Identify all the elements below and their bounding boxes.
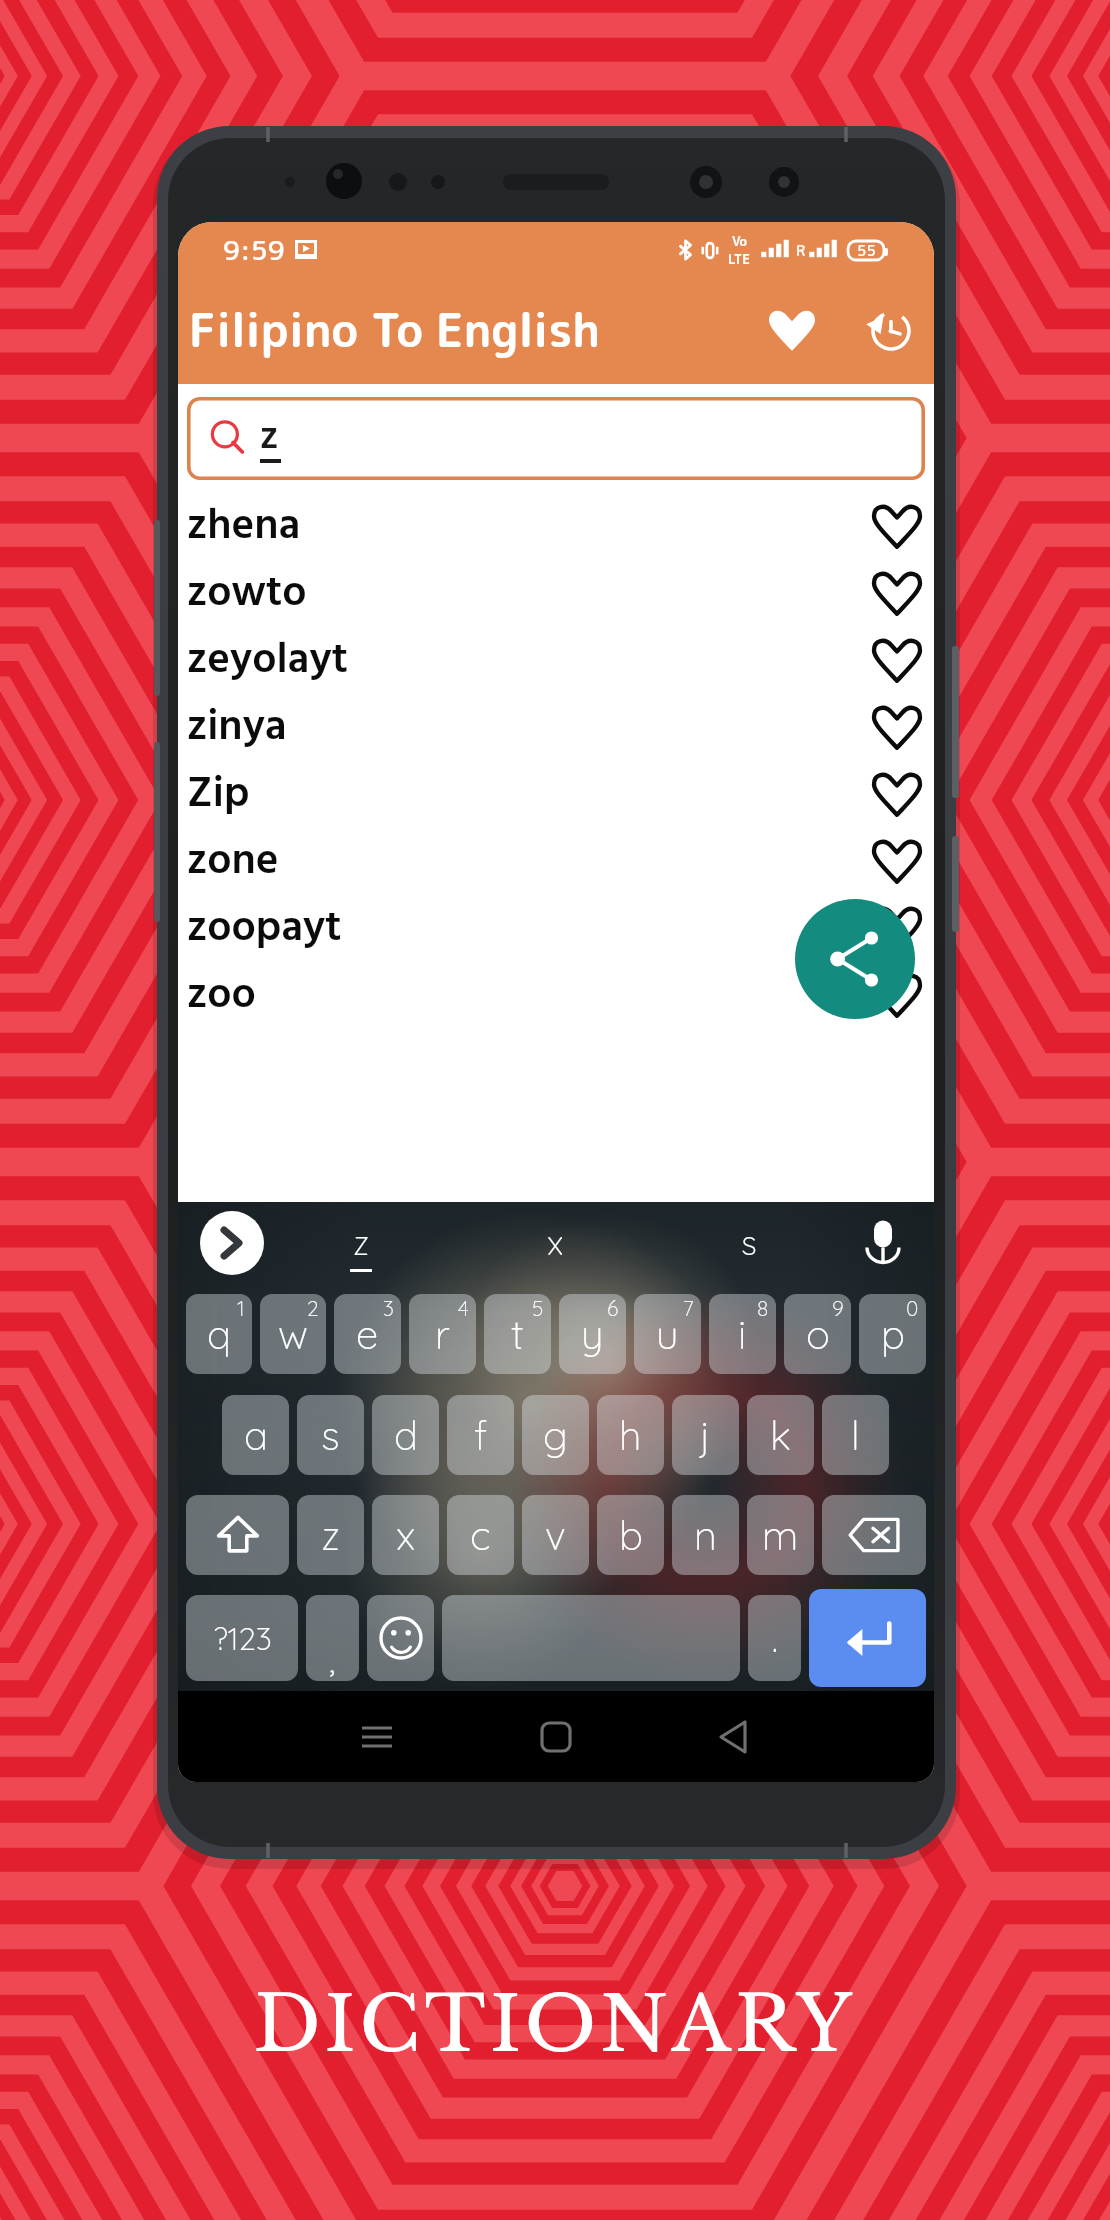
staticText: u [656, 1309, 679, 1359]
button[interactable]: l [822, 1395, 889, 1475]
staticText: w [278, 1309, 308, 1359]
button[interactable]: x [458, 1202, 652, 1283]
button[interactable]: zhena [178, 493, 934, 560]
button[interactable]: More options [200, 1211, 264, 1275]
button[interactable]: Space [442, 1595, 740, 1681]
staticText: zhena [187, 493, 301, 560]
staticText: zowto [187, 560, 307, 627]
staticText: . [772, 1616, 778, 1661]
staticText: zinya [187, 694, 287, 761]
button[interactable]: d [372, 1395, 439, 1475]
button[interactable]: t [484, 1294, 551, 1374]
button[interactable]: zowto [178, 560, 934, 627]
button[interactable]: n [672, 1495, 739, 1575]
button[interactable]: ?123 [186, 1595, 298, 1681]
button[interactable]: Zip [178, 761, 934, 828]
staticText: 1 [237, 1295, 245, 1321]
staticText: o [806, 1309, 830, 1359]
staticText: 9 [832, 1295, 844, 1321]
staticText: x [547, 1221, 564, 1264]
staticText: b [619, 1510, 643, 1560]
button[interactable]: Back [693, 1694, 779, 1780]
staticText: a [244, 1410, 268, 1460]
button[interactable]: Share [795, 899, 915, 1019]
button[interactable]: q [186, 1294, 252, 1374]
staticText: e [356, 1309, 379, 1359]
button[interactable]: w [260, 1294, 326, 1374]
button[interactable]: b [597, 1495, 664, 1575]
button[interactable]: Shift [186, 1495, 289, 1575]
staticText: n [694, 1510, 717, 1560]
button[interactable]: c [447, 1495, 514, 1575]
button[interactable]: zeyolayt [178, 627, 934, 694]
staticText: zoopayt [187, 895, 342, 962]
staticText: 6 [607, 1295, 619, 1321]
staticText: z [260, 407, 279, 469]
staticText: Vo [732, 232, 748, 250]
staticText: q [207, 1309, 231, 1359]
button[interactable]: g [522, 1395, 589, 1475]
button[interactable]: Emoji [367, 1595, 434, 1681]
button[interactable]: m [747, 1495, 814, 1575]
button[interactable]: . [748, 1595, 801, 1681]
button[interactable]: e [334, 1294, 401, 1374]
staticText: r [435, 1309, 450, 1359]
staticText: x [396, 1510, 416, 1560]
staticText: l [851, 1410, 860, 1460]
button[interactable]: Backspace [822, 1495, 926, 1575]
staticText: i [738, 1309, 747, 1359]
staticText: R [796, 240, 806, 261]
button[interactable]: i [709, 1294, 776, 1374]
staticText: Filipino To English [189, 298, 601, 362]
button[interactable]: s [297, 1395, 364, 1475]
button[interactable]: zoopayt [178, 895, 934, 962]
button[interactable]: p [859, 1294, 926, 1374]
staticText: c [470, 1510, 491, 1560]
button[interactable]: Recent apps [334, 1694, 420, 1780]
staticText: zoo [187, 962, 256, 1029]
staticText: 55 [857, 240, 876, 261]
button[interactable]: Enter [809, 1589, 926, 1687]
staticText: f [474, 1410, 488, 1460]
staticText: k [770, 1410, 791, 1460]
staticText: y [581, 1309, 604, 1359]
button[interactable]: y [559, 1294, 626, 1374]
staticText: 4 [458, 1295, 469, 1321]
button[interactable]: s [652, 1202, 846, 1283]
staticText: z [353, 1221, 370, 1264]
staticText: 5 [532, 1295, 544, 1321]
button[interactable]: a [222, 1395, 289, 1475]
button[interactable]: zinya [178, 694, 934, 761]
button[interactable]: z [297, 1495, 364, 1575]
button[interactable]: h [597, 1395, 664, 1475]
staticText: v [545, 1510, 566, 1560]
staticText: zone [187, 828, 279, 895]
staticText: 0 [906, 1295, 919, 1321]
button[interactable]: , [306, 1595, 359, 1681]
staticText: 7 [683, 1295, 694, 1321]
button[interactable]: Home [513, 1694, 599, 1780]
button[interactable]: u [634, 1294, 701, 1374]
button[interactable]: zone [178, 828, 934, 895]
button[interactable]: r [409, 1294, 476, 1374]
button[interactable]: o [784, 1294, 851, 1374]
button[interactable]: x [372, 1495, 439, 1575]
button[interactable]: f [447, 1395, 514, 1475]
button[interactable]: j [672, 1395, 739, 1475]
staticText: z [321, 1510, 341, 1560]
staticText: j [700, 1410, 711, 1460]
staticText: 2 [307, 1295, 319, 1321]
button[interactable]: zoo [178, 962, 934, 1029]
button[interactable]: z [264, 1202, 458, 1283]
staticText: Zip [187, 761, 250, 828]
button[interactable]: Voice input [846, 1202, 920, 1283]
button[interactable]: History [851, 291, 931, 371]
staticText: t [511, 1309, 524, 1359]
button[interactable]: k [747, 1395, 814, 1475]
button[interactable]: Favourites [752, 291, 832, 371]
staticText: ?123 [213, 1619, 272, 1658]
staticText: g [543, 1410, 568, 1460]
button[interactable]: v [522, 1495, 589, 1575]
staticText: d [394, 1410, 418, 1460]
button[interactable]: z [187, 397, 925, 480]
